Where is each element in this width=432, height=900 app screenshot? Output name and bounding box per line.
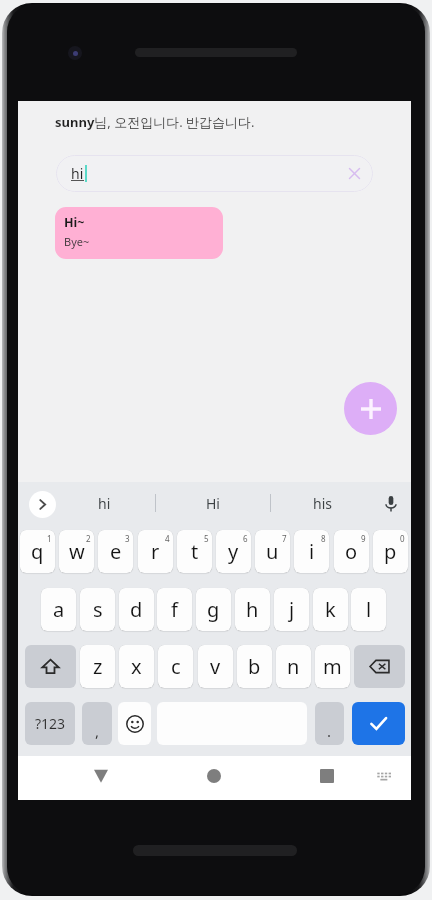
staticText: 4	[165, 533, 170, 544]
staticText: l	[366, 596, 372, 623]
button[interactable]: g	[196, 588, 231, 631]
button[interactable]: r	[138, 530, 173, 573]
button[interactable]: m	[315, 645, 350, 688]
staticText: 0	[400, 533, 405, 544]
staticText: 6	[243, 533, 248, 544]
button[interactable]: e	[98, 530, 133, 573]
staticText: 3	[125, 533, 130, 544]
button[interactable]: d	[119, 588, 154, 631]
button[interactable]: hi	[56, 155, 373, 192]
staticText: 2	[86, 533, 91, 544]
staticText: t	[191, 538, 199, 565]
staticText: .	[327, 721, 332, 741]
button[interactable]: Comma	[82, 702, 112, 745]
staticText: h	[246, 596, 259, 623]
button[interactable]: l	[351, 588, 386, 631]
button[interactable]: Voice input	[380, 493, 402, 515]
button[interactable]: hi	[41, 482, 155, 524]
staticText: a	[53, 596, 65, 623]
button[interactable]: o	[334, 530, 369, 573]
staticText: ?123	[35, 714, 66, 733]
button[interactable]: c	[158, 645, 193, 688]
button[interactable]: u	[255, 530, 290, 573]
button[interactable]: his	[270, 482, 384, 524]
staticText: 5	[204, 533, 209, 544]
staticText: b	[248, 653, 261, 680]
staticText: Hi~	[64, 214, 85, 231]
button[interactable]: b	[237, 645, 272, 688]
button[interactable]: a	[41, 588, 76, 631]
button[interactable]: Recents	[307, 756, 347, 796]
staticText: d	[130, 596, 143, 623]
staticText: n	[287, 653, 300, 680]
staticText: hi	[98, 494, 111, 513]
button[interactable]: k	[313, 588, 348, 631]
button[interactable]: Shift	[25, 645, 76, 688]
button[interactable]: Enter	[352, 702, 405, 745]
staticText: c	[171, 653, 181, 680]
staticText: i	[309, 538, 315, 565]
button[interactable]: More suggestions	[29, 491, 56, 518]
staticText: v	[210, 653, 221, 680]
staticText: x	[131, 653, 142, 680]
staticText: k	[325, 596, 336, 623]
button[interactable]: s	[80, 588, 115, 631]
button[interactable]: z	[80, 645, 115, 688]
button[interactable]: p	[373, 530, 408, 573]
button[interactable]: Hi~	[55, 207, 223, 259]
button[interactable]: Period	[315, 702, 344, 745]
button[interactable]: Add	[344, 382, 397, 435]
button[interactable]: q	[20, 530, 55, 573]
staticText: z	[93, 653, 103, 680]
staticText: w	[69, 538, 85, 565]
button[interactable]: y	[216, 530, 251, 573]
staticText: u	[266, 538, 279, 565]
button[interactable]: Hi	[155, 482, 269, 524]
staticText: e	[110, 538, 122, 565]
button[interactable]: j	[274, 588, 309, 631]
button[interactable]: h	[235, 588, 270, 631]
staticText: f	[171, 596, 178, 623]
button[interactable]: t	[177, 530, 212, 573]
staticText: r	[151, 538, 160, 565]
staticText: his	[313, 494, 332, 513]
staticText: y	[228, 538, 239, 565]
button[interactable]: Back	[81, 756, 121, 796]
button[interactable]: Switch keyboard	[366, 758, 402, 794]
staticText: 7	[282, 533, 287, 544]
staticText: ,	[95, 721, 100, 741]
staticText: q	[31, 538, 44, 565]
button[interactable]: x	[119, 645, 154, 688]
staticText: 9	[361, 533, 366, 544]
staticText: j	[289, 596, 295, 623]
staticText: sunny님, 오전입니다. 반갑습니다.	[55, 113, 255, 131]
button[interactable]: Home	[194, 756, 234, 796]
staticText: Bye~	[64, 234, 90, 249]
button[interactable]: v	[198, 645, 233, 688]
staticText: g	[207, 596, 220, 623]
button[interactable]: n	[276, 645, 311, 688]
button[interactable]: Backspace	[354, 645, 405, 688]
staticText: Hi	[206, 494, 220, 513]
staticText: o	[345, 538, 358, 565]
button[interactable]: w	[59, 530, 94, 573]
staticText: m	[323, 653, 342, 680]
staticText: p	[384, 538, 397, 565]
staticText: 1	[47, 533, 52, 544]
staticText: 8	[321, 533, 326, 544]
button[interactable]: i	[294, 530, 329, 573]
staticText: hi	[71, 164, 84, 183]
button[interactable]: f	[157, 588, 192, 631]
button[interactable]: ?123	[25, 702, 75, 745]
other: Clear	[349, 168, 360, 179]
button[interactable]: Emoji	[118, 702, 151, 745]
staticText: s	[93, 596, 103, 623]
